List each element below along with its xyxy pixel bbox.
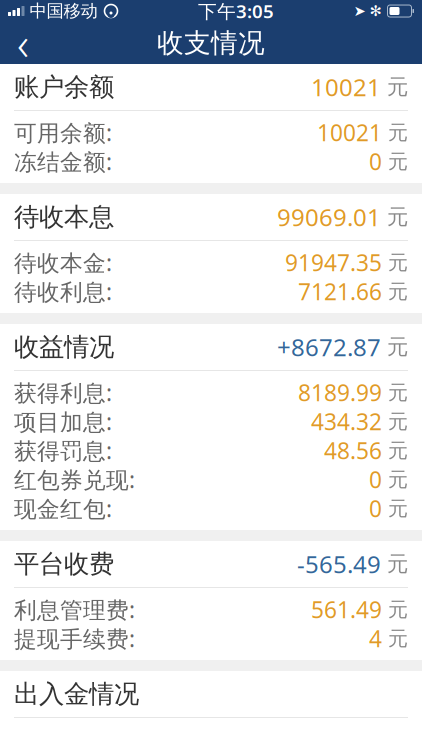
- button[interactable]: 收益情况: [0, 324, 422, 370]
- staticText: 48.56: [324, 435, 382, 465]
- staticText: 获得罚息:: [14, 435, 112, 465]
- staticText: 冻结金额:: [14, 146, 112, 176]
- button[interactable]: Back: [0, 22, 46, 64]
- staticText: 元: [382, 597, 408, 622]
- staticText: 中国移动: [29, 0, 97, 22]
- staticText: 0: [369, 146, 382, 176]
- button[interactable]: 出入金情况: [0, 671, 422, 717]
- staticText: 待收本息: [14, 201, 114, 232]
- staticText: 提现手续费:: [14, 623, 135, 653]
- staticText: 7121.66: [298, 276, 382, 306]
- staticText: 元: [382, 120, 408, 145]
- staticText: 0: [369, 493, 382, 523]
- staticText: 元: [382, 279, 408, 304]
- staticText: 元: [382, 467, 408, 492]
- staticText: 8189.99: [298, 377, 382, 407]
- staticText: 收支情况: [157, 27, 265, 59]
- button[interactable]: 账户余额: [0, 64, 422, 110]
- staticText: 元: [381, 551, 408, 577]
- staticText: -565.49: [297, 548, 381, 580]
- staticText: 获得利息:: [14, 377, 112, 407]
- staticText: 434.32: [311, 406, 382, 436]
- button[interactable]: 平台收费: [0, 541, 422, 587]
- staticText: 元: [381, 334, 408, 360]
- staticText: 平台收费: [14, 548, 114, 579]
- staticText: ➤: [353, 3, 365, 19]
- staticText: 99069.01: [277, 201, 381, 233]
- staticText: 待收利息:: [14, 276, 112, 306]
- staticText: 元: [382, 149, 408, 174]
- staticText: 红包券兑现:: [14, 464, 135, 494]
- staticText: 收益情况: [14, 331, 114, 362]
- staticText: 待收本金:: [14, 247, 112, 277]
- staticText: +8672.87: [277, 331, 381, 363]
- staticText: ‹: [17, 13, 29, 73]
- staticText: 4: [369, 623, 382, 653]
- staticText: 元: [381, 74, 408, 100]
- staticText: 10021: [317, 117, 382, 147]
- staticText: 91947.35: [285, 247, 382, 277]
- staticText: 元: [382, 380, 408, 405]
- staticText: 元: [381, 204, 408, 230]
- staticText: 可用余额:: [14, 117, 112, 147]
- button[interactable]: 待收本息: [0, 194, 422, 240]
- staticText: 元: [382, 438, 408, 463]
- staticText: 561.49: [311, 594, 382, 624]
- staticText: ✻: [369, 3, 381, 19]
- staticText: 元: [382, 626, 408, 651]
- staticText: 利息管理费:: [14, 594, 135, 624]
- staticText: 现金红包:: [14, 493, 112, 523]
- staticText: 下午3:05: [198, 0, 274, 23]
- staticText: 元: [382, 250, 408, 275]
- staticText: 元: [382, 409, 408, 434]
- staticText: 项目加息:: [14, 406, 112, 436]
- staticText: 0: [369, 464, 382, 494]
- staticText: 账户余额: [14, 71, 114, 102]
- staticText: 10021: [311, 71, 381, 103]
- staticText: 出入金情况: [14, 678, 139, 709]
- staticText: 元: [382, 496, 408, 521]
